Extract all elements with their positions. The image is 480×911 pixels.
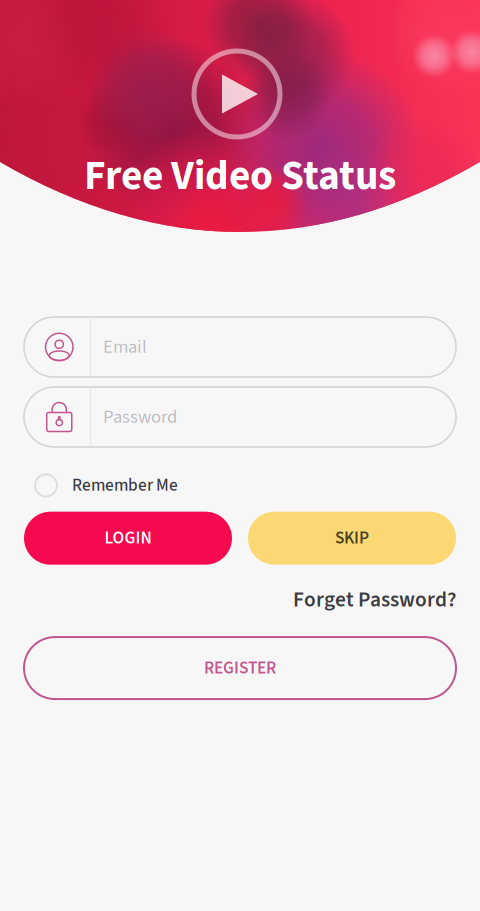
staticText: Forget Password? — [293, 585, 456, 615]
staticText: Free Video Status — [84, 147, 396, 205]
button[interactable]: Remember Me — [35, 473, 178, 498]
button[interactable]: SKIP — [248, 512, 456, 565]
staticText: REGISTER — [204, 656, 276, 680]
staticText: SKIP — [335, 526, 369, 550]
staticText: Email — [103, 334, 147, 360]
button[interactable]: LOGIN — [24, 512, 232, 565]
button[interactable]: REGISTER — [24, 637, 456, 699]
staticText: Remember Me — [72, 473, 178, 498]
staticText: Password — [103, 404, 177, 430]
staticText: LOGIN — [104, 526, 151, 550]
button[interactable]: Forget Password? — [293, 585, 456, 615]
